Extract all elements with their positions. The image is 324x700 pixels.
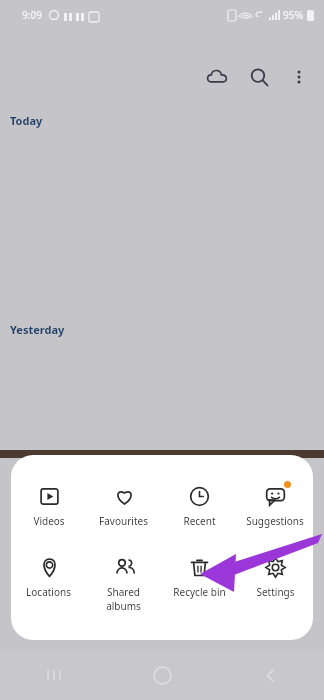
button[interactable]: Favourites [86, 481, 161, 530]
staticText: Favourites [99, 514, 148, 528]
staticText: 95% [283, 8, 303, 22]
staticText: Locations [26, 585, 71, 599]
button[interactable]: More options [280, 58, 318, 96]
staticText: Suggestions [246, 514, 304, 528]
button[interactable]: Cloud [196, 56, 238, 98]
staticText: Settings [256, 585, 295, 599]
button[interactable]: Search [238, 56, 280, 98]
staticText: Videos [33, 514, 65, 528]
button[interactable]: Settings [237, 552, 313, 601]
staticText: Today [10, 113, 43, 128]
staticText: Shared [107, 585, 140, 599]
button[interactable]: Recycle bin [161, 552, 237, 601]
staticText: Recent [183, 514, 216, 528]
button[interactable]: Locations [11, 552, 86, 601]
button[interactable]: Recent [161, 481, 237, 530]
staticText: albums [106, 599, 141, 613]
staticText: 9:09 [22, 8, 42, 22]
button[interactable]: Suggestions [237, 481, 313, 530]
staticText: Yesterday [10, 322, 65, 337]
button[interactable]: Shared [86, 552, 161, 615]
button[interactable]: Videos [11, 481, 86, 530]
staticText: Recycle bin [173, 585, 226, 599]
